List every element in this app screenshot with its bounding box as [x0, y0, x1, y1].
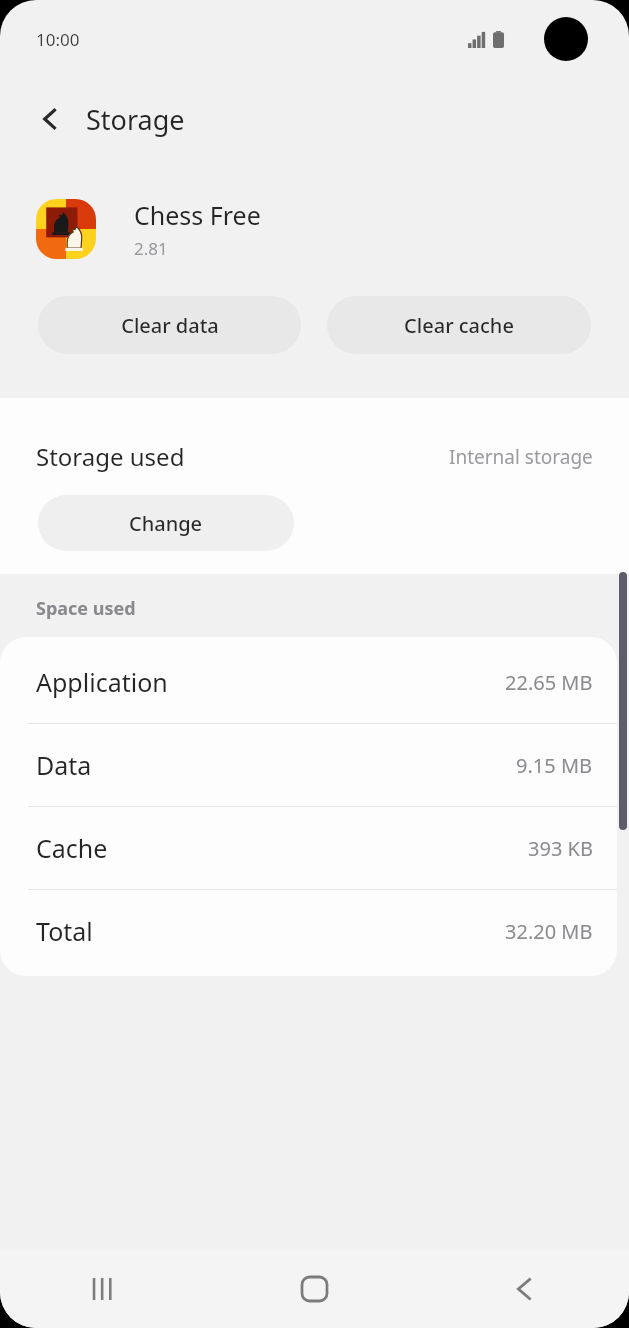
button[interactable]: Home: [209, 1250, 419, 1328]
button[interactable]: Recent apps: [0, 1250, 209, 1328]
staticText: Storage: [86, 101, 185, 138]
staticText: 22.65 MB: [505, 669, 593, 696]
staticText: Clear cache: [404, 312, 514, 339]
button[interactable]: Clear cache: [327, 296, 591, 354]
button[interactable]: Back: [24, 93, 76, 145]
staticText: Chess Free: [134, 198, 261, 232]
button[interactable]: Cache: [0, 807, 617, 890]
button[interactable]: Change: [38, 495, 294, 551]
staticText: Change: [129, 510, 203, 537]
staticText: Total: [36, 914, 93, 948]
staticText: 9.15 MB: [516, 752, 593, 779]
staticText: Internal storage: [449, 444, 593, 470]
staticText: Clear data: [121, 312, 219, 339]
staticText: Storage used: [36, 440, 185, 473]
button[interactable]: Data: [0, 724, 617, 807]
staticText: 2.81: [134, 237, 168, 260]
staticText: Cache: [36, 831, 108, 865]
staticText: 32.20 MB: [505, 918, 593, 945]
staticText: Application: [36, 665, 168, 699]
staticText: Data: [36, 748, 92, 782]
staticText: 10:00: [36, 28, 80, 51]
button[interactable]: Back: [419, 1250, 629, 1328]
staticText: Space used: [36, 596, 136, 621]
staticText: 393 KB: [528, 835, 593, 862]
button[interactable]: Clear data: [38, 296, 301, 354]
button[interactable]: Total: [0, 890, 617, 972]
button[interactable]: Application: [0, 641, 617, 724]
